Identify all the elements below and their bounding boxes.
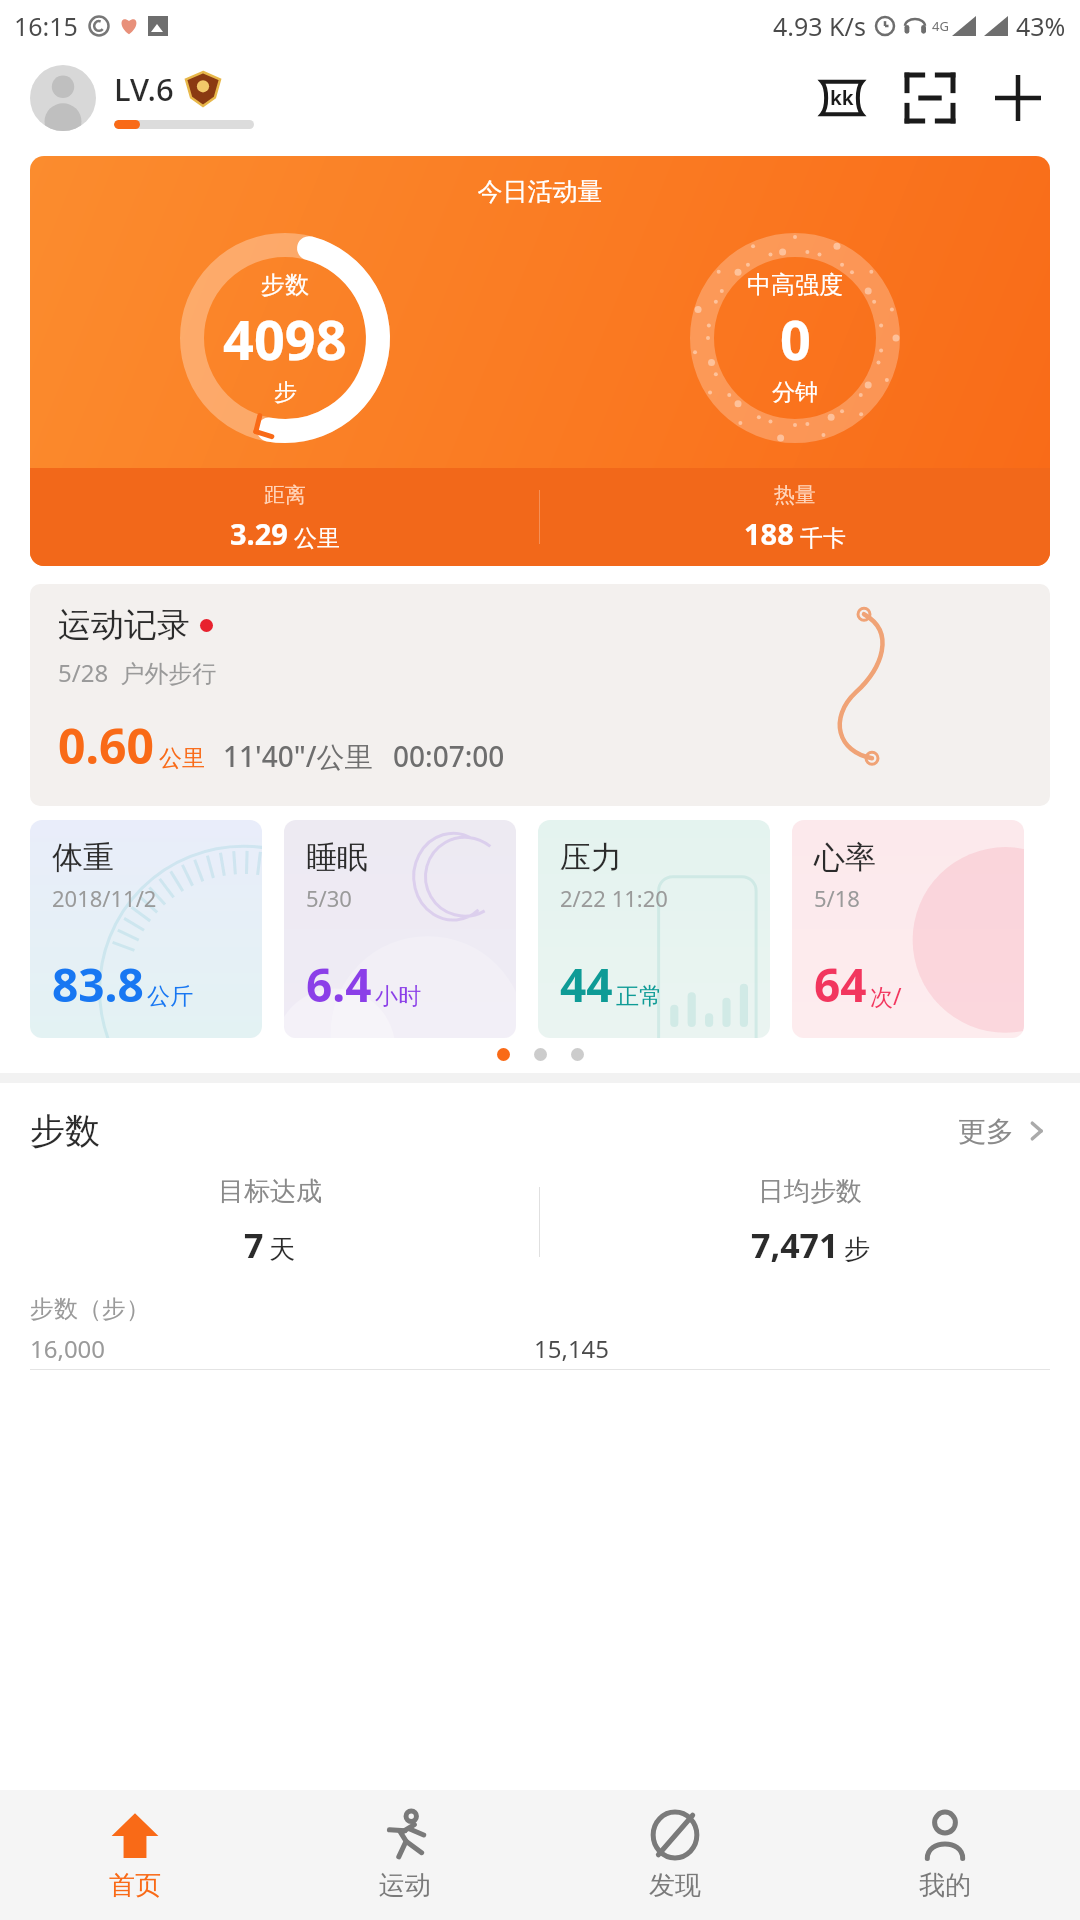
button[interactable]: Coupons [810,66,874,130]
staticText: 7 [244,1222,264,1268]
staticText: 6.4 [306,953,372,1016]
staticText: 公斤 [147,982,193,1011]
button[interactable]: 压力 [538,820,770,1038]
staticText: 5/28 户外步行 [58,656,217,689]
button[interactable]: 今日活动量 [30,156,1050,566]
staticText: 44 [560,953,613,1016]
staticText: 2018/11/2 [52,883,157,913]
staticText: 4.93 K/s [773,9,866,43]
staticText: 小时 [375,982,421,1011]
staticText: 步数 [261,270,309,300]
staticText: 16:15 [14,9,78,43]
staticText: 中高强度 [747,270,843,300]
staticText: 00:07:00 [393,737,505,775]
button[interactable]: 我的 [810,1790,1080,1920]
staticText: 目标达成 [218,1175,322,1208]
staticText: 2/22 11:20 [560,883,668,913]
staticText: 运动记录 [58,604,190,646]
staticText: 次/ [870,980,902,1011]
staticText: 0 [780,302,811,376]
staticText: 3.29 [230,514,288,553]
staticText: kk [830,85,854,111]
button[interactable]: 运动 [270,1790,540,1920]
button[interactable]: 发现 [540,1790,810,1920]
staticText: 千卡 [800,524,846,553]
staticText: 体重 [52,838,114,877]
button[interactable]: 心率 [792,820,1024,1038]
button[interactable]: Add [986,66,1050,130]
staticText: 5/30 [306,883,352,913]
button[interactable]: 步数 [30,1109,1050,1153]
staticText: 距离 [264,482,306,508]
staticText: 心率 [814,838,876,877]
staticText: 15,145 [534,1332,610,1365]
staticText: 64 [814,953,867,1016]
staticText: 日均步数 [758,1175,862,1208]
staticText: 83.8 [52,953,144,1016]
staticText: 7,471 [751,1222,839,1268]
staticText: 4G [932,17,949,35]
button[interactable]: Scan [898,66,962,130]
staticText: 我的 [919,1869,971,1902]
button[interactable]: Profile [30,65,96,131]
staticText: 公里 [294,524,340,553]
staticText: 步数 [30,1109,100,1153]
staticText: 43% [1016,9,1066,43]
staticText: 天 [269,1233,295,1266]
staticText: 步数（步） [30,1294,150,1324]
staticText: 16,000 [30,1332,106,1365]
staticText: 首页 [109,1869,161,1902]
staticText: 0.60 [58,713,154,778]
staticText: LV.6 [114,68,174,110]
staticText: 正常 [616,982,662,1011]
staticText: 更多 [958,1114,1014,1149]
button[interactable]: 运动记录 [30,584,1050,806]
staticText: 压力 [560,838,622,877]
staticText: 运动 [379,1869,431,1902]
staticText: 步 [844,1233,870,1266]
button[interactable]: 体重 [30,820,262,1038]
staticText: 睡眠 [306,838,368,877]
staticText: 今日活动量 [30,176,1050,207]
button[interactable]: 首页 [0,1790,270,1920]
staticText: 5/18 [814,883,860,913]
staticText: 分钟 [772,378,818,407]
staticText: 11'40"/公里 [223,737,373,775]
staticText: 公里 [159,744,205,773]
staticText: 热量 [774,482,816,508]
button[interactable]: 睡眠 [284,820,516,1038]
staticText: 4098 [223,302,347,376]
staticText: 发现 [649,1869,701,1902]
staticText: 188 [744,514,794,553]
staticText: 步 [274,378,297,407]
